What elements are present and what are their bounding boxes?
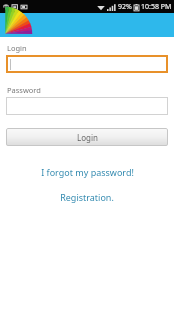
staticText: I forgot my password! — [41, 166, 134, 178]
button[interactable]: App logo — [4, 16, 25, 34]
button[interactable]: I forgot my password! — [0, 166, 174, 178]
button[interactable]: Login — [6, 128, 168, 146]
staticText: Login — [77, 132, 98, 143]
staticText: 10:58 PM — [141, 2, 172, 12]
staticText: Password — [7, 85, 41, 95]
button[interactable] — [6, 97, 168, 115]
staticText: Registration. — [60, 191, 114, 203]
button[interactable]: Registration. — [0, 191, 174, 203]
staticText: 92% — [118, 2, 132, 12]
button[interactable] — [6, 55, 168, 73]
staticText: Login — [7, 43, 27, 53]
